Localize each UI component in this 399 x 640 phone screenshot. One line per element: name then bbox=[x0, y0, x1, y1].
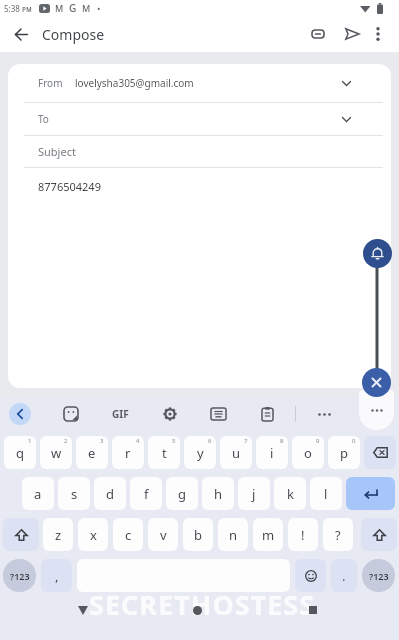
button[interactable]: f bbox=[130, 477, 162, 510]
button[interactable]: , bbox=[41, 559, 72, 592]
button[interactable]: From bbox=[8, 64, 391, 102]
staticText: SECRETHOSTESS bbox=[89, 586, 316, 623]
button[interactable] bbox=[310, 400, 338, 428]
staticText: 8 bbox=[280, 437, 284, 445]
button[interactable] bbox=[339, 16, 365, 52]
button[interactable]: b bbox=[183, 518, 213, 551]
staticText: a bbox=[34, 485, 42, 503]
button[interactable]: g bbox=[166, 477, 198, 510]
button[interactable]: ! bbox=[288, 518, 318, 551]
button[interactable] bbox=[300, 597, 326, 623]
button[interactable]: l bbox=[310, 477, 342, 510]
staticText: GIF bbox=[112, 407, 129, 421]
button[interactable]: k bbox=[274, 477, 306, 510]
button[interactable] bbox=[9, 403, 31, 425]
staticText: From bbox=[38, 76, 63, 90]
staticText: e bbox=[88, 444, 96, 462]
staticText: 6 bbox=[208, 437, 212, 445]
button[interactable]: q bbox=[4, 436, 36, 469]
staticText: f bbox=[144, 485, 149, 503]
button[interactable] bbox=[361, 518, 397, 551]
staticText: l bbox=[324, 485, 328, 503]
staticText: 2 bbox=[64, 437, 68, 445]
staticText: x bbox=[90, 526, 97, 544]
button[interactable]: c bbox=[113, 518, 143, 551]
button[interactable]: i bbox=[256, 436, 288, 469]
button[interactable] bbox=[346, 477, 395, 510]
staticText: Compose bbox=[42, 25, 105, 44]
button[interactable]: m bbox=[253, 518, 283, 551]
button[interactable]: y bbox=[184, 436, 216, 469]
button[interactable] bbox=[363, 239, 392, 268]
button[interactable] bbox=[305, 16, 331, 52]
staticText: lovelysha305@gmail.com bbox=[75, 76, 194, 90]
button[interactable]: s bbox=[58, 477, 90, 510]
button[interactable]: e bbox=[76, 436, 108, 469]
button[interactable]: ? bbox=[323, 518, 353, 551]
button[interactable] bbox=[0, 16, 42, 52]
staticText: 0 bbox=[352, 437, 356, 445]
staticText: z bbox=[55, 526, 62, 544]
button[interactable]: o bbox=[292, 436, 324, 469]
button[interactable] bbox=[364, 436, 396, 469]
button[interactable]: ?123 bbox=[3, 559, 36, 592]
staticText: ! bbox=[301, 526, 305, 544]
staticText: 3 bbox=[100, 437, 104, 445]
button[interactable]: r bbox=[112, 436, 144, 469]
button[interactable] bbox=[3, 518, 39, 551]
staticText: 5:38 ᴘᴍ bbox=[4, 3, 32, 14]
button[interactable] bbox=[365, 16, 391, 52]
button[interactable] bbox=[204, 400, 232, 428]
staticText: n bbox=[229, 526, 238, 544]
button[interactable]: ?123 bbox=[362, 559, 395, 592]
staticText: i bbox=[270, 444, 274, 462]
staticText: 7 bbox=[244, 437, 248, 445]
button[interactable]: n bbox=[218, 518, 248, 551]
staticText: 8776504249 bbox=[38, 179, 101, 194]
button[interactable]: x bbox=[78, 518, 108, 551]
staticText: • bbox=[97, 2, 101, 14]
button[interactable]: . bbox=[331, 559, 357, 592]
staticText: 1 bbox=[28, 437, 32, 445]
staticText: g bbox=[178, 485, 186, 503]
button[interactable]: d bbox=[94, 477, 126, 510]
button[interactable] bbox=[184, 597, 210, 623]
button[interactable] bbox=[362, 368, 391, 397]
button[interactable]: w bbox=[40, 436, 72, 469]
button[interactable]: t bbox=[148, 436, 180, 469]
staticText: r bbox=[125, 444, 131, 462]
staticText: ?123 bbox=[10, 570, 30, 582]
staticText: M bbox=[82, 2, 91, 14]
button[interactable]: j bbox=[238, 477, 270, 510]
button[interactable]: v bbox=[148, 518, 178, 551]
button[interactable]: h bbox=[202, 477, 234, 510]
staticText: q bbox=[16, 444, 24, 462]
button[interactable] bbox=[253, 400, 281, 428]
button[interactable] bbox=[156, 400, 184, 428]
button[interactable]: z bbox=[43, 518, 73, 551]
staticText: p bbox=[340, 444, 348, 462]
button[interactable] bbox=[57, 400, 85, 428]
button[interactable] bbox=[359, 390, 394, 430]
button[interactable] bbox=[70, 597, 96, 623]
staticText: y bbox=[197, 444, 204, 462]
staticText: Subject bbox=[38, 144, 76, 159]
staticText: c bbox=[125, 526, 132, 544]
button[interactable]: p bbox=[328, 436, 360, 469]
staticText: b bbox=[194, 526, 202, 544]
button[interactable]: GIF bbox=[106, 400, 134, 428]
staticText: G bbox=[69, 1, 77, 15]
button[interactable]: To bbox=[8, 103, 391, 135]
staticText: w bbox=[51, 444, 62, 462]
staticText: m bbox=[262, 526, 275, 544]
staticText: v bbox=[160, 526, 167, 544]
staticText: o bbox=[304, 444, 312, 462]
staticText: d bbox=[106, 485, 114, 503]
button[interactable]: u bbox=[220, 436, 252, 469]
button[interactable]: a bbox=[22, 477, 54, 510]
staticText: s bbox=[71, 485, 78, 503]
staticText: M bbox=[55, 2, 64, 14]
button[interactable] bbox=[295, 559, 326, 592]
button[interactable]: Subject bbox=[8, 136, 391, 167]
